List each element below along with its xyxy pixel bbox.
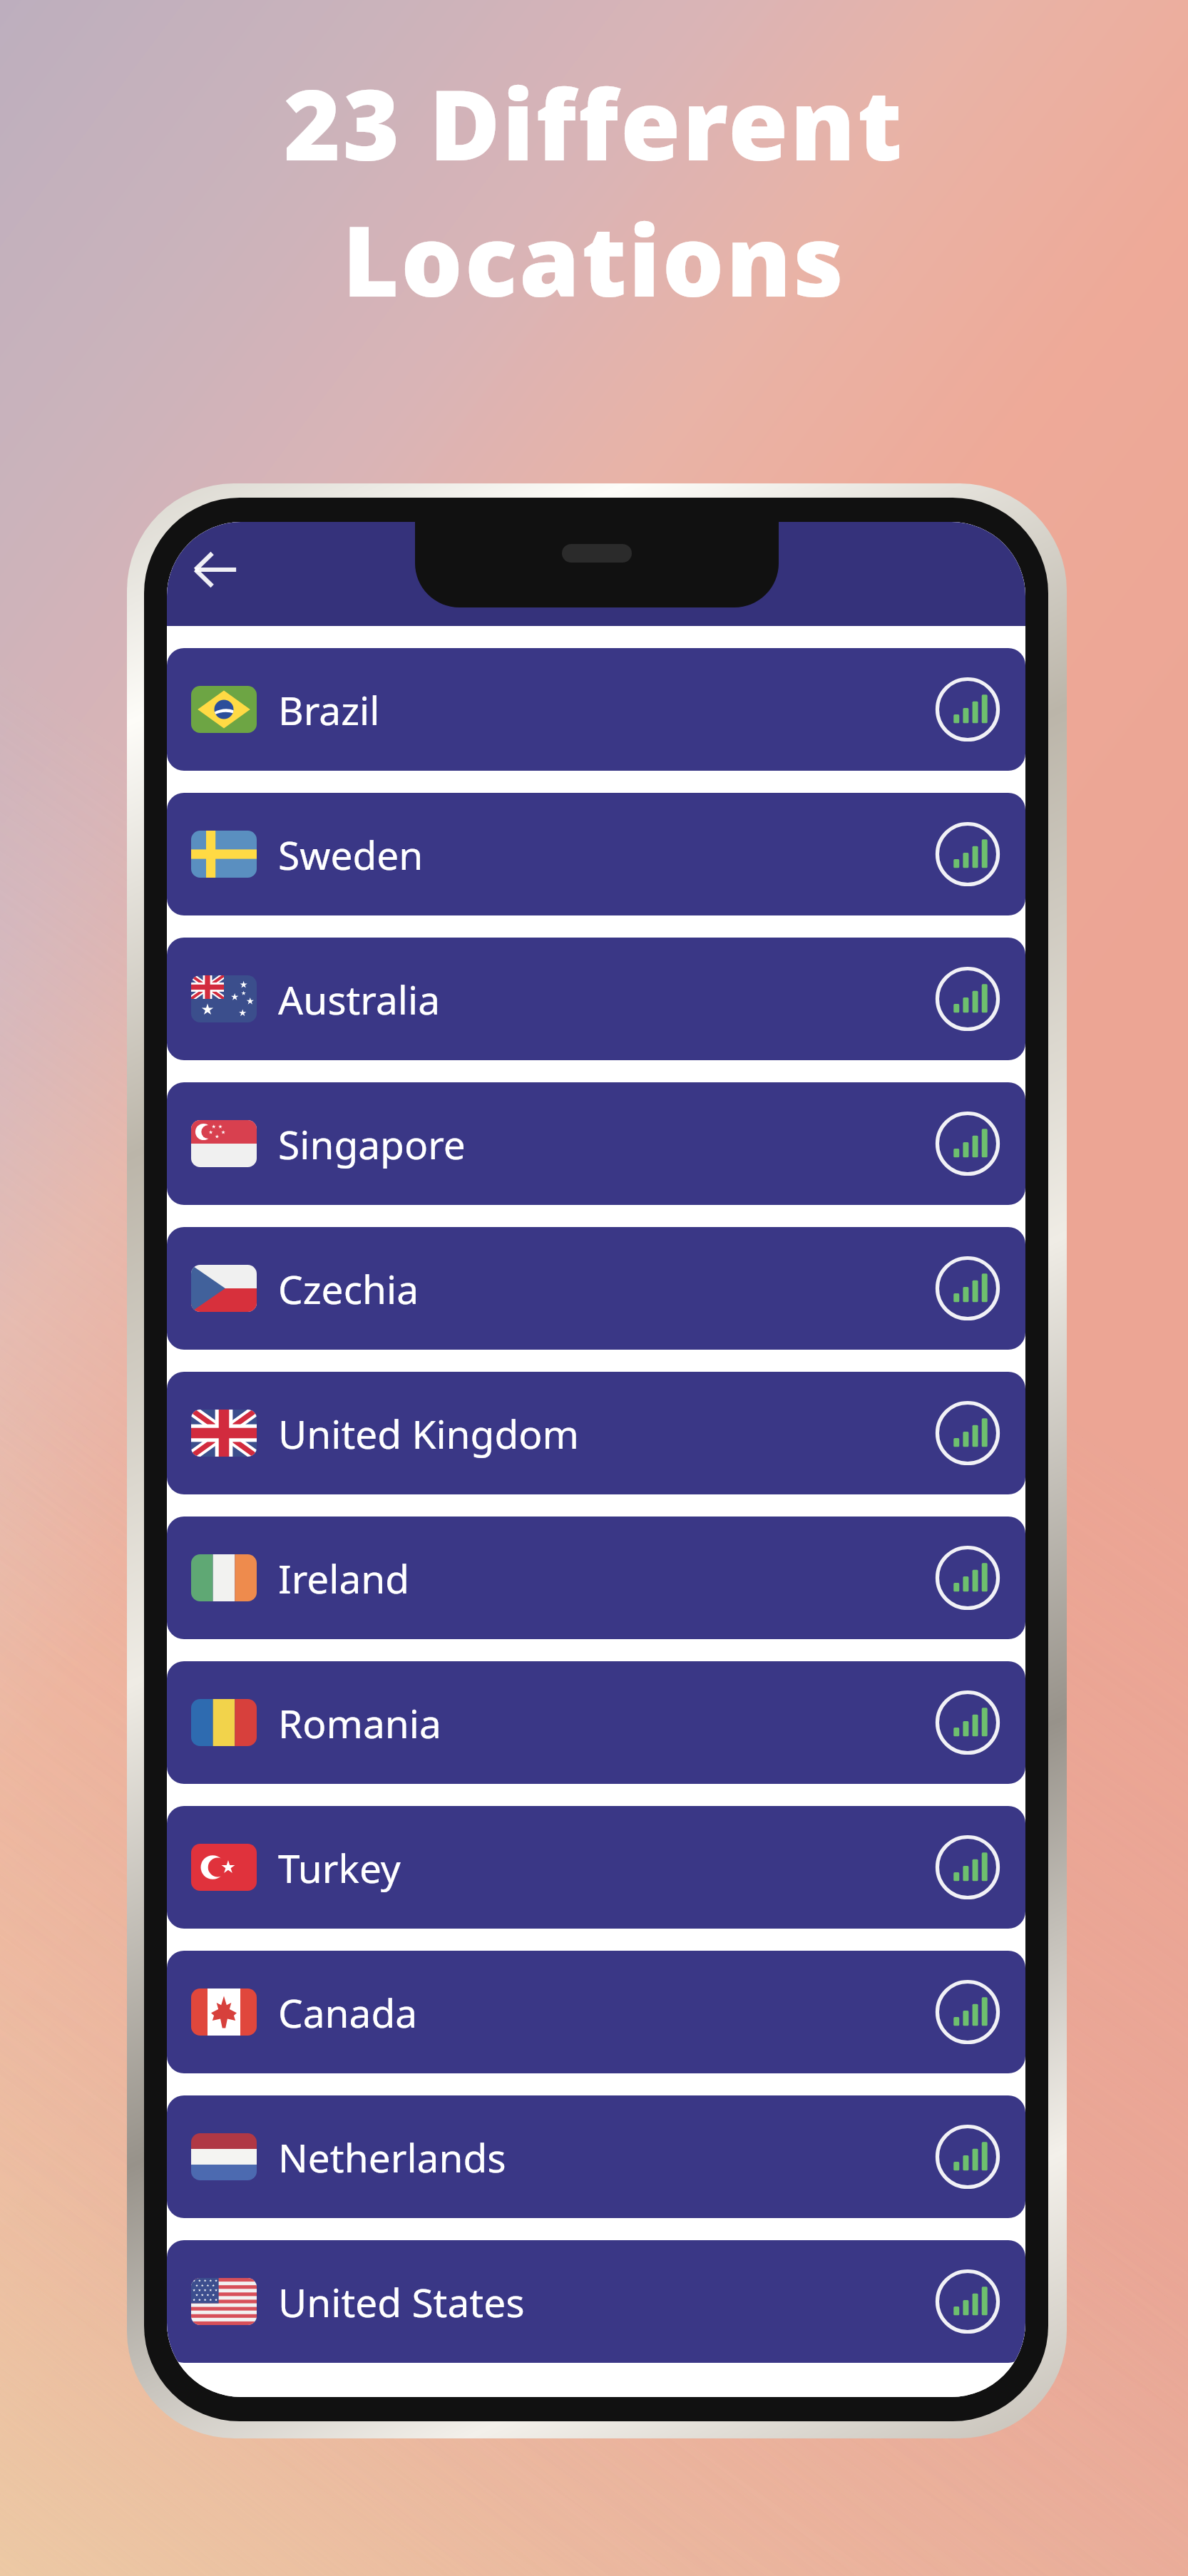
button[interactable]: Signal strength — [934, 1689, 1001, 1756]
button[interactable]: Signal strength — [934, 2268, 1001, 2335]
button[interactable]: Signal strength — [934, 1979, 1001, 2046]
staticText: 23 Different — [284, 57, 904, 189]
staticText: Australia — [278, 973, 441, 1026]
button[interactable]: Signal strength — [934, 676, 1001, 743]
button[interactable]: Signal strength — [934, 2123, 1001, 2190]
staticText: Czechia — [278, 1262, 419, 1315]
button[interactable]: Signal strength — [934, 821, 1001, 888]
button[interactable]: Romania — [167, 1661, 1025, 1784]
staticText: United Kingdom — [278, 1407, 579, 1460]
button[interactable]: Czechia — [167, 1227, 1025, 1350]
staticText: Sweden — [278, 828, 424, 881]
button[interactable]: Back — [177, 531, 254, 608]
staticText: Ireland — [278, 1551, 410, 1605]
staticText: United States — [278, 2275, 525, 2329]
button[interactable]: United States — [167, 2240, 1025, 2363]
button[interactable]: Signal strength — [934, 1255, 1001, 1322]
button[interactable]: Signal strength — [934, 1110, 1001, 1177]
button[interactable]: Singapore — [167, 1082, 1025, 1205]
staticText: Singapore — [278, 1117, 466, 1171]
button[interactable]: Signal strength — [934, 1834, 1001, 1901]
button[interactable]: Signal strength — [934, 1544, 1001, 1611]
button[interactable]: Sweden — [167, 793, 1025, 915]
button[interactable]: Signal strength — [934, 965, 1001, 1032]
staticText: Brazil — [278, 683, 380, 737]
button[interactable]: Australia — [167, 938, 1025, 1060]
button[interactable]: Signal strength — [934, 1400, 1001, 1467]
button[interactable]: Ireland — [167, 1517, 1025, 1639]
button[interactable]: Brazil — [167, 648, 1025, 771]
button[interactable]: Netherlands — [167, 2095, 1025, 2218]
staticText: Romania — [278, 1696, 441, 1750]
staticText: Netherlands — [278, 2130, 506, 2184]
staticText: Locations — [342, 193, 846, 325]
staticText: Turkey — [278, 1841, 401, 1894]
staticText: Canada — [278, 1986, 418, 2039]
button[interactable]: United Kingdom — [167, 1372, 1025, 1494]
button[interactable]: Turkey — [167, 1806, 1025, 1929]
button[interactable]: Canada — [167, 1951, 1025, 2073]
